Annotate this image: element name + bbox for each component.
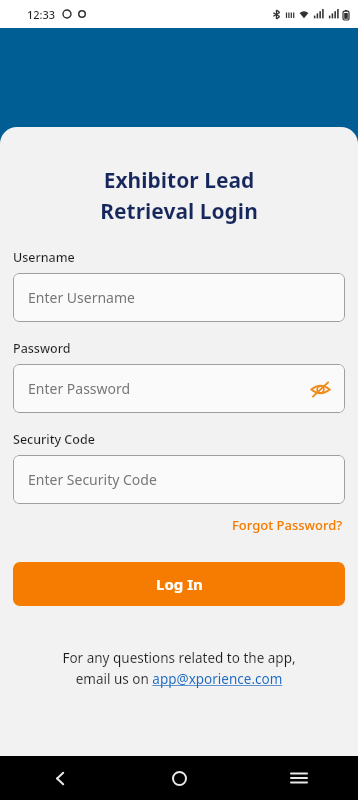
staticText: Security Code bbox=[13, 431, 95, 448]
button[interactable]: Recent apps bbox=[239, 756, 358, 800]
button[interactable]: Home bbox=[120, 756, 239, 800]
button[interactable]: Forgot Password? bbox=[230, 514, 345, 536]
staticText: For any questions related to the app, em… bbox=[13, 649, 345, 688]
button[interactable]: Enter Security Code bbox=[13, 455, 345, 504]
staticText: Enter Security Code bbox=[28, 470, 157, 489]
staticText: 12:33 bbox=[27, 7, 56, 22]
button[interactable]: Enter Password bbox=[13, 364, 345, 413]
staticText: Exhibitor Lead Retrieval Login bbox=[13, 166, 345, 225]
button[interactable]: Show password bbox=[307, 376, 333, 402]
staticText: Forgot Password? bbox=[232, 516, 343, 534]
button[interactable]: Log In bbox=[13, 562, 345, 606]
staticText: Password bbox=[13, 340, 71, 357]
staticText: Log In bbox=[156, 574, 203, 594]
staticText: Enter Password bbox=[28, 379, 131, 398]
button[interactable]: Back bbox=[0, 756, 120, 800]
staticText: Username bbox=[13, 249, 75, 266]
button[interactable]: Enter Username bbox=[13, 273, 345, 322]
staticText: Enter Username bbox=[28, 288, 135, 307]
